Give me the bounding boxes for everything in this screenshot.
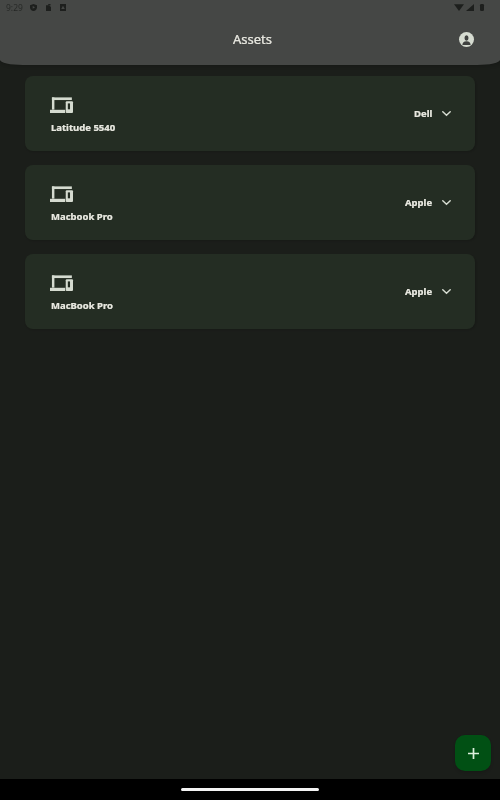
other: Expand	[442, 111, 451, 116]
button[interactable]: Macbook Pro	[25, 165, 475, 240]
button[interactable]: Account	[454, 27, 479, 52]
staticText: Macbook Pro	[51, 210, 113, 223]
staticText: MacBook Pro	[51, 299, 113, 312]
staticText: Apple	[405, 285, 433, 298]
staticText: Latitude 5540	[51, 121, 116, 134]
staticText: 9:29	[6, 2, 23, 14]
staticText: Dell	[414, 107, 433, 120]
button[interactable]: Add asset	[455, 735, 491, 771]
button[interactable]: Latitude 5540	[25, 76, 475, 151]
other: Expand	[442, 289, 451, 294]
staticText: Assets	[233, 30, 273, 48]
staticText: Apple	[405, 196, 433, 209]
other: Expand	[442, 200, 451, 205]
button[interactable]: MacBook Pro	[25, 254, 475, 329]
